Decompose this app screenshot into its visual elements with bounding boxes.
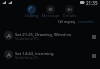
other: Details [65,5,74,14]
button[interactable]: Sat 14:44, incoming [4,50,97,64]
staticText: Sat 14:44, incoming [15,51,54,57]
button[interactable]: Sat 21:25, Drawing, Wired ca [4,31,97,45]
other: Calling [27,5,36,14]
other: Message [46,5,55,14]
staticText: Details [60,12,79,18]
button[interactable]: Call back [91,53,97,59]
button[interactable]: Message [41,5,60,20]
staticText: Calling [22,12,41,18]
button[interactable]: Details [60,5,79,20]
staticText: Message [41,12,60,18]
staticText: Sat 21:25, Drawing, Wired ca [15,32,71,38]
button[interactable]: Call back [91,34,97,40]
staticText: Call ongoing [58,20,76,24]
staticText: somewhere [78,20,94,24]
staticText: 21:35 [86,0,98,5]
staticText: Vodafone.PL [15,36,39,41]
staticText: Vodafone.PL [15,55,39,60]
button[interactable]: Calling [22,5,41,20]
